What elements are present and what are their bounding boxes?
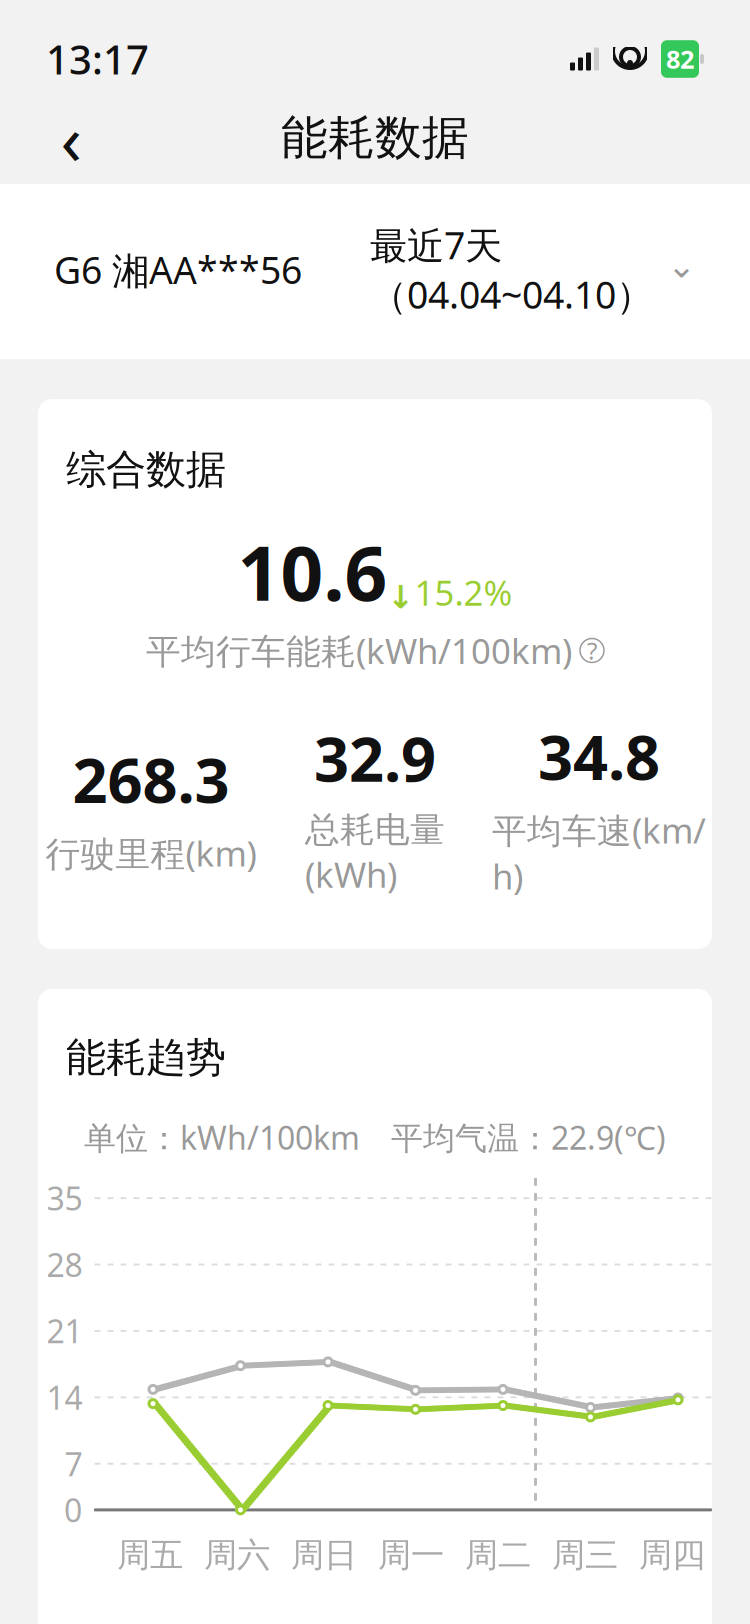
staticText: 单位：kWh/100km xyxy=(84,1116,360,1159)
staticText: 最近7天（04.04~04.10） xyxy=(370,220,653,319)
staticText: 平均气温：22.9(℃) xyxy=(391,1116,666,1159)
button[interactable]: 返回 xyxy=(36,103,106,173)
staticText: 周三 xyxy=(552,1535,618,1575)
staticText: 34.8 xyxy=(538,715,660,797)
staticText: 能耗数据 xyxy=(281,109,469,167)
staticText: ‹ xyxy=(60,92,81,184)
staticText: ? xyxy=(587,634,597,666)
staticText: 平均车速(km/h) xyxy=(492,807,706,899)
staticText: 能耗趋势 xyxy=(66,1033,226,1082)
staticText: 14 xyxy=(46,1376,82,1419)
button[interactable]: 最近7天（04.04~04.10） xyxy=(370,220,696,319)
staticText: 28 xyxy=(46,1243,82,1286)
staticText: 82 xyxy=(666,42,694,76)
staticText: 周一 xyxy=(378,1535,444,1575)
staticText: 平均行车能耗(kWh/100km) xyxy=(146,627,572,673)
staticText: 15.2% xyxy=(414,569,512,615)
button[interactable]: G6 湘AA***56 xyxy=(54,245,302,294)
staticText: 268.3 xyxy=(72,738,229,820)
staticText: 13:17 xyxy=(46,32,149,85)
staticText: 0 xyxy=(64,1489,82,1531)
button[interactable]: 说明 xyxy=(580,638,604,662)
staticText: 32.9 xyxy=(314,717,436,799)
staticText: 周二 xyxy=(465,1535,531,1575)
staticText: 周日 xyxy=(291,1535,357,1575)
staticText: 10.6 xyxy=(237,522,387,621)
staticText: 总耗电量(kWh) xyxy=(305,809,445,897)
staticText: 21 xyxy=(46,1310,82,1352)
staticText: 行驶里程(km) xyxy=(45,830,256,876)
staticText: G6 湘AA***56 xyxy=(54,245,302,294)
staticText: 周五 xyxy=(117,1535,183,1575)
staticText: 周四 xyxy=(639,1535,705,1575)
staticText: 周六 xyxy=(204,1535,270,1575)
staticText: 7 xyxy=(64,1442,82,1485)
staticText: 综合数据 xyxy=(66,445,226,494)
staticText: 35 xyxy=(46,1177,82,1219)
staticText: ⌄ xyxy=(667,246,696,285)
staticText: ↓ xyxy=(387,579,414,615)
